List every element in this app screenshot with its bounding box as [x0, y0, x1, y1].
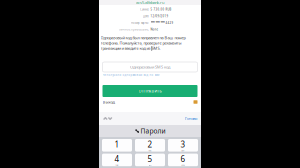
staticText: Дата:	[143, 14, 149, 18]
staticText: Сумма:	[140, 8, 149, 11]
button[interactable]: 2	[135, 139, 165, 152]
button[interactable]: 5	[135, 154, 165, 166]
staticText: Ж З И	[148, 164, 151, 166]
staticText: 5 730.00 RUB	[150, 8, 171, 11]
button[interactable]: 3	[168, 139, 198, 152]
staticText: Одноразовый SMS код	[130, 64, 170, 70]
button[interactable]: Не получили одноразовый код по SMS?	[102, 73, 197, 77]
staticText: Не получили одноразовый код по SMS?	[102, 73, 159, 77]
staticText: None	[150, 28, 158, 31]
staticText: Г Д Е	[115, 164, 118, 166]
button[interactable]: 4	[102, 154, 132, 166]
button[interactable]: Выход	[102, 99, 114, 105]
staticText: A B C	[148, 150, 151, 151]
staticText: acs5.alfabank.ru	[136, 0, 164, 5]
staticText: Готово	[185, 116, 197, 121]
staticText: **** **** **** 4429	[150, 21, 173, 25]
button[interactable]: 1	[102, 139, 132, 152]
staticText: 6	[180, 154, 185, 164]
button[interactable]: Готово	[185, 116, 197, 121]
staticText: 2	[147, 139, 152, 150]
staticText: Одноразовый код был направлен на Ваш ном…	[100, 35, 185, 51]
staticText: Выход	[102, 99, 114, 105]
staticText: 5	[147, 154, 152, 164]
staticText: К Л М	[181, 164, 184, 166]
staticText: Пароли	[140, 127, 165, 135]
staticText: 12/09/2019	[150, 14, 168, 18]
staticText: 3	[180, 139, 185, 150]
button[interactable]: Previous field	[103, 116, 108, 121]
button[interactable]: 6	[168, 154, 198, 166]
staticText: Личное приветствие:	[119, 28, 149, 31]
staticText: ОТПРАВИТЬ	[138, 88, 161, 94]
button[interactable]: Next field	[108, 116, 113, 121]
staticText: 1	[114, 139, 119, 150]
staticText: Номер карты:	[131, 21, 149, 25]
button[interactable]: Пароли	[99, 125, 201, 137]
staticText: D E F	[181, 150, 184, 151]
button[interactable]: ОТПРАВИТЬ	[102, 85, 197, 97]
staticText: 4	[114, 154, 119, 164]
